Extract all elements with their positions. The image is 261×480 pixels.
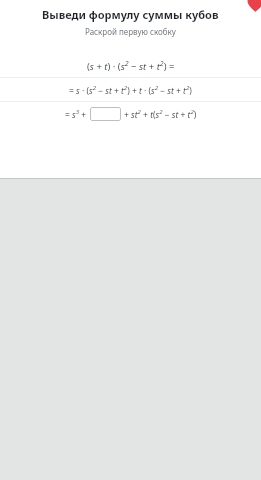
staticText: + st2 + t(s2 − st + t2) [124,108,197,120]
staticText: Выведи формулу суммы кубов [42,7,219,22]
button[interactable]: Поле для ответа [90,107,121,121]
button[interactable]: Жизни [247,0,261,13]
staticText: (s + t) · (s2 − st + t2) = [87,59,175,73]
staticText: = s · (s2 − st + t2) + t · (s2 − st + t2… [69,84,192,96]
button[interactable]: = s · (s2 − st + t2) + t · (s2 − st + t2… [0,78,261,101]
staticText: Раскрой первую скобку [85,26,176,37]
button[interactable]: (s + t) · (s2 − st + t2) = [0,54,261,77]
staticText: = s3 + [65,108,87,120]
